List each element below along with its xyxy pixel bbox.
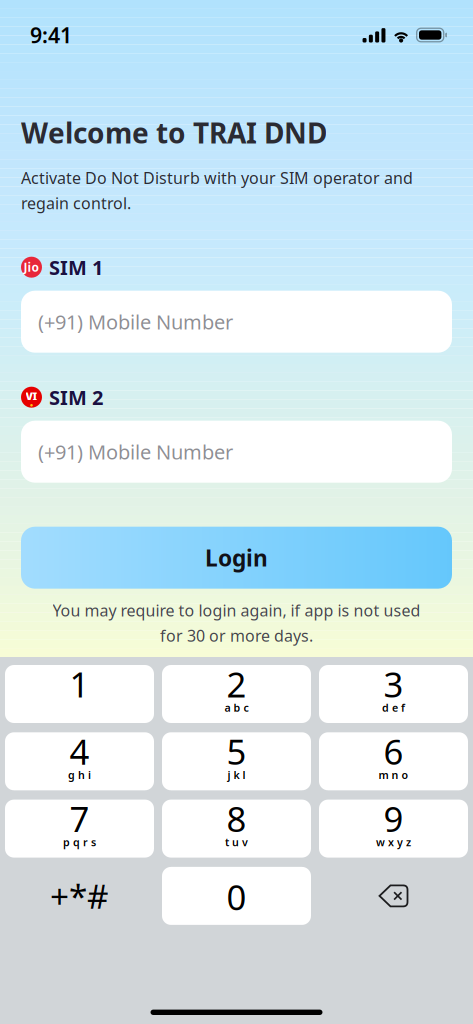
button[interactable]: 5	[162, 732, 311, 790]
staticText: Welcome to TRAI DND	[21, 114, 327, 151]
button[interactable]: 2	[162, 665, 311, 723]
staticText: 6	[383, 728, 403, 774]
staticText: j k l	[227, 768, 245, 782]
button[interactable]: 7	[5, 800, 154, 858]
staticText: 9:41	[30, 21, 72, 49]
button[interactable]: +*#	[5, 867, 154, 925]
staticText: w x y z	[376, 835, 411, 849]
staticText: m n o	[378, 768, 408, 782]
staticText: g h i	[68, 768, 91, 782]
staticText: a b c	[224, 700, 248, 715]
staticText: SIM 2	[49, 384, 103, 410]
staticText: for 30 or more days.	[160, 625, 313, 646]
staticText: 1	[69, 661, 89, 707]
staticText: d e f	[382, 700, 405, 715]
staticText: Login	[205, 543, 268, 573]
staticText: VI	[25, 389, 37, 403]
button[interactable]: (+91) Mobile Number	[21, 291, 452, 353]
button[interactable]: 6	[319, 732, 468, 790]
staticText: 4	[69, 728, 89, 774]
staticText: 2	[226, 661, 246, 707]
button[interactable]: 4	[5, 732, 154, 790]
staticText: 5	[226, 728, 246, 774]
button[interactable]: (+91) Mobile Number	[21, 421, 452, 483]
staticText: 9	[383, 796, 403, 842]
button[interactable]: 1	[5, 665, 154, 723]
staticText: +*#	[50, 874, 109, 918]
button[interactable]: 3	[319, 665, 468, 723]
staticText: regain control.	[21, 192, 131, 214]
staticText: (+91) Mobile Number	[38, 438, 233, 465]
staticText: You may require to login again, if app i…	[52, 600, 420, 621]
staticText: SIM 1	[49, 254, 103, 280]
staticText: 3	[383, 661, 403, 707]
staticText: t u v	[225, 835, 248, 849]
staticText: (+91) Mobile Number	[38, 308, 233, 335]
button[interactable]: Login	[21, 527, 452, 589]
staticText: 8	[226, 796, 246, 842]
staticText: Jio	[23, 259, 39, 275]
button[interactable]: 9	[319, 800, 468, 858]
staticText: Activate Do Not Disturb with your SIM op…	[21, 167, 413, 188]
button[interactable]: 8	[162, 800, 311, 858]
staticText: 0	[226, 874, 246, 920]
staticText: p q r s	[63, 835, 96, 849]
button[interactable]: Delete	[319, 867, 468, 925]
button[interactable]: 0	[162, 867, 311, 925]
staticText: 7	[69, 796, 89, 842]
